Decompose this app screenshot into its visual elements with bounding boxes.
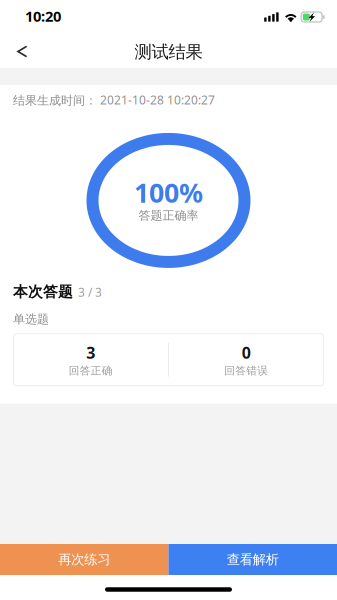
staticText: 单选题	[13, 312, 49, 327]
staticText: 0	[242, 342, 251, 363]
staticText: 查看解析	[227, 551, 279, 568]
staticText: 测试结果	[134, 41, 202, 63]
button[interactable]: 查看解析	[168, 544, 337, 575]
staticText: 100%	[134, 175, 203, 210]
staticText: 3 / 3	[78, 284, 102, 300]
staticText: 再次练习	[58, 551, 110, 568]
button[interactable]: Back	[0, 26, 39, 70]
staticText: 本次答题	[13, 283, 73, 301]
staticText: 结果生成时间： 2021-10-28 10:20:27	[13, 92, 215, 108]
staticText: 3	[86, 342, 95, 363]
button[interactable]: 再次练习	[0, 544, 168, 575]
staticText: 答题正确率	[138, 208, 198, 223]
staticText: 回答错误	[224, 364, 268, 377]
staticText: 10:20	[25, 6, 61, 26]
staticText: 回答正确	[69, 364, 113, 377]
